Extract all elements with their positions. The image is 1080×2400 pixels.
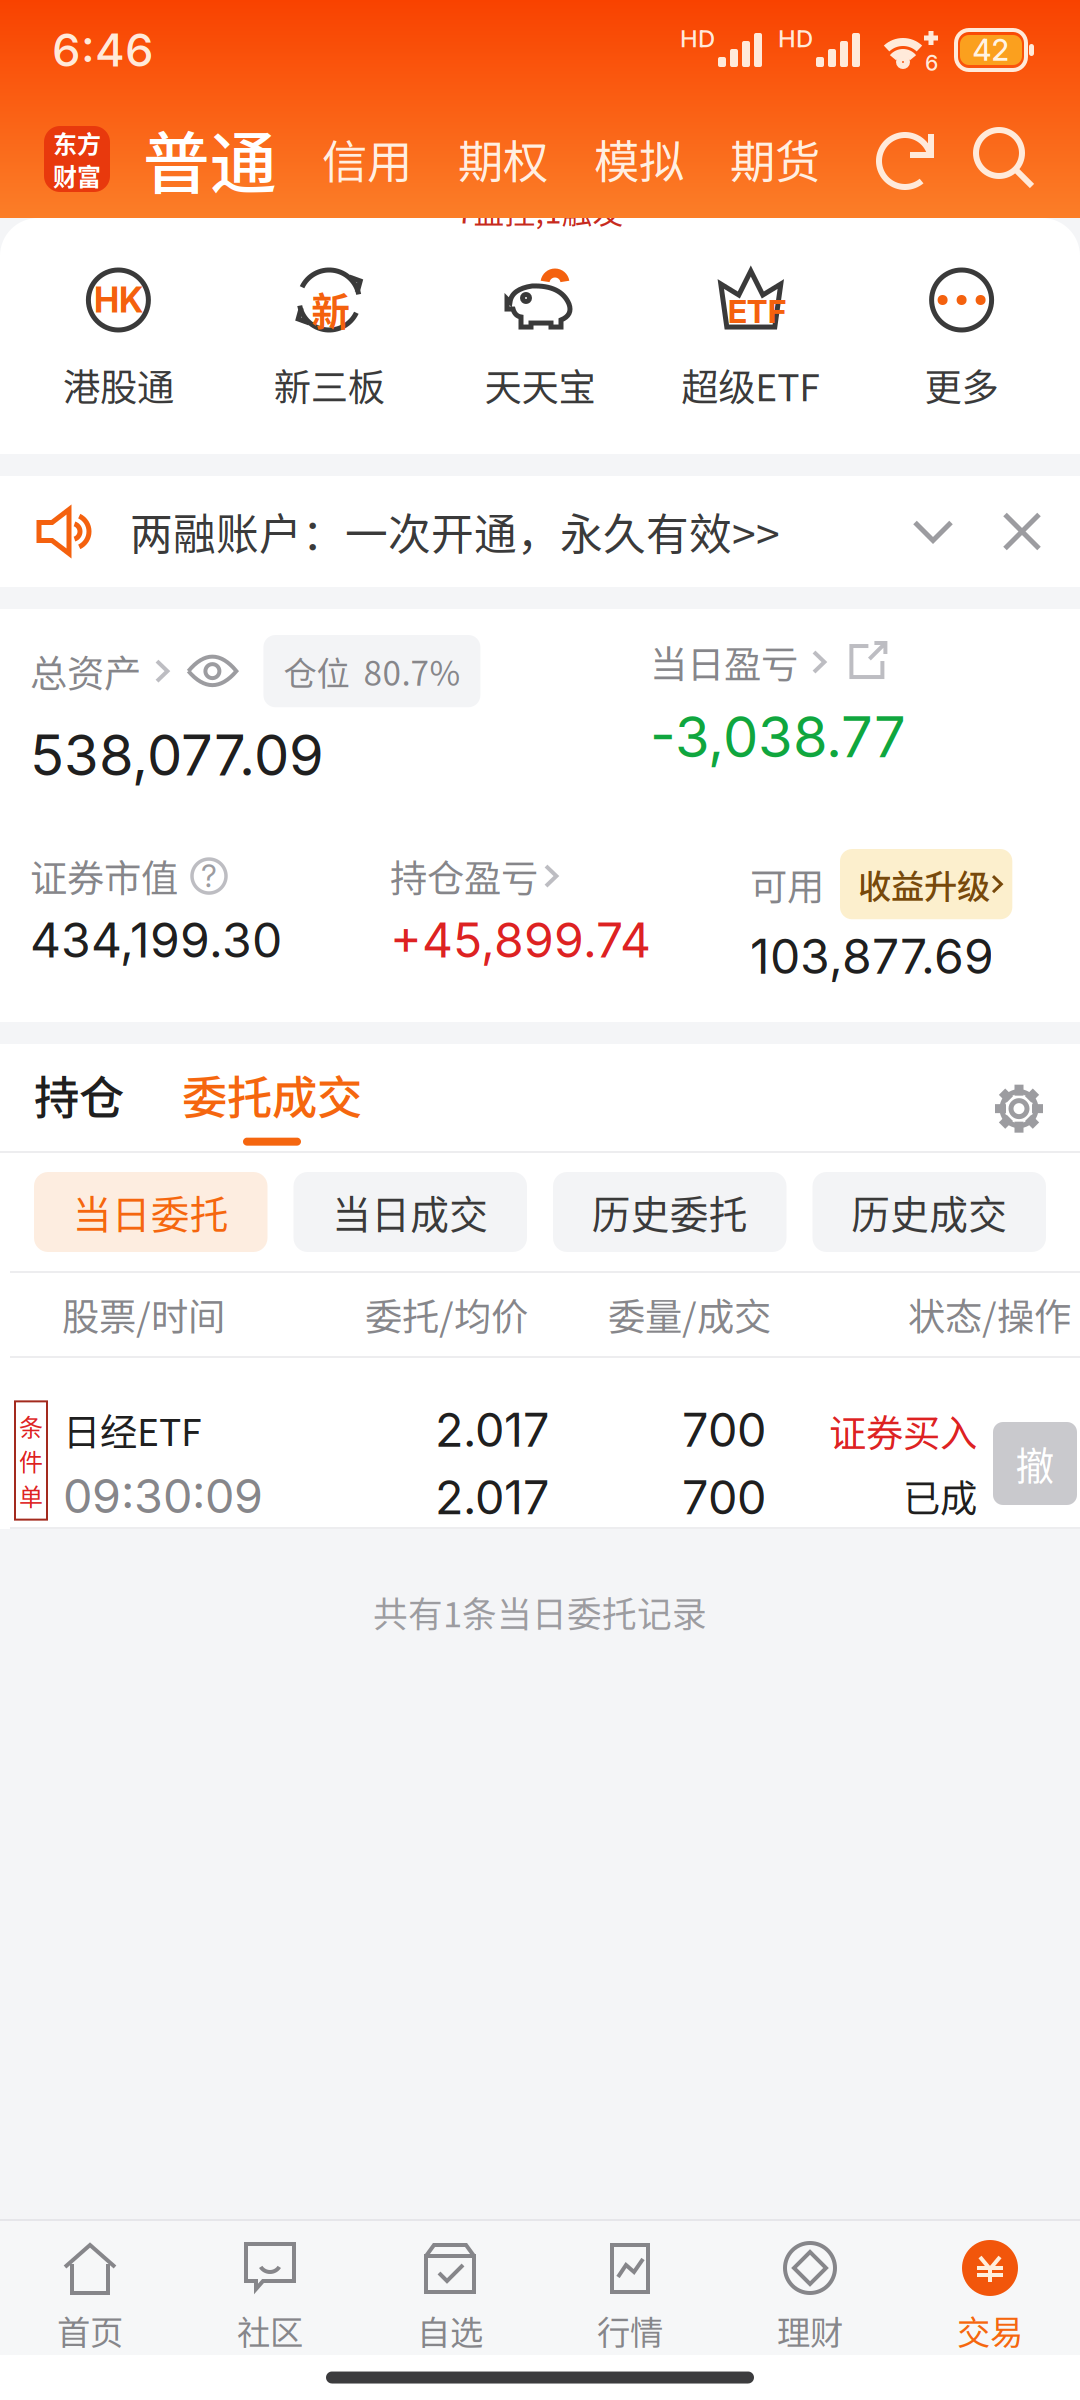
staticText: 可用 <box>750 857 824 911</box>
button[interactable]: 刷新 <box>874 128 936 190</box>
button[interactable]: 首页 <box>0 2221 180 2355</box>
button[interactable]: 持仓盈亏 <box>390 849 750 969</box>
staticText: 历史委托 <box>592 1184 748 1240</box>
staticText: 证券买入 <box>829 1404 977 1458</box>
staticText: 撤 <box>1015 1435 1054 1491</box>
staticText: 持仓 <box>34 1062 124 1128</box>
staticText: 状态/操作 <box>908 1287 1071 1342</box>
staticText: ETF <box>728 292 787 331</box>
button[interactable]: 天天宝 <box>435 264 645 412</box>
staticText: 2.017 <box>435 1469 549 1525</box>
staticText: 股票/时间 <box>62 1287 225 1342</box>
staticText: 当日委托 <box>73 1184 229 1240</box>
staticText: 超级ETF <box>681 358 820 412</box>
staticText: 103,877.69 <box>750 927 994 985</box>
button[interactable]: 普通 <box>143 111 277 207</box>
staticText: 538,077.09 <box>30 721 324 789</box>
button[interactable]: 期货 <box>730 126 820 192</box>
button[interactable]: HK <box>13 264 224 412</box>
staticText: 已成 <box>903 1469 977 1523</box>
staticText: 7监控,1触发 <box>456 188 623 232</box>
staticText: 条 <box>19 1408 43 1443</box>
button[interactable]: 委托成交 <box>182 1062 362 1146</box>
button[interactable]: 当日委托 <box>34 1172 267 1252</box>
staticText: 收益升级 <box>858 860 990 908</box>
staticText: 期权 <box>458 126 548 192</box>
button[interactable]: 当日成交 <box>293 1172 527 1252</box>
staticText: 港股通 <box>63 358 174 412</box>
button[interactable]: 总资产 <box>30 635 480 707</box>
staticText: 更多 <box>925 358 999 412</box>
staticText: 天天宝 <box>484 358 595 412</box>
staticText: +45,899.74 <box>390 911 651 969</box>
staticText: 自选 <box>417 2306 483 2354</box>
button[interactable]: 交易 <box>900 2221 1080 2355</box>
button[interactable]: 当日盈亏 <box>650 635 890 689</box>
staticText: 东方 <box>53 125 101 160</box>
staticText: 当日成交 <box>332 1184 488 1240</box>
staticText: 两融账户：一次开通，永久有效>> <box>130 501 780 562</box>
button[interactable]: ETF <box>645 264 856 412</box>
staticText: 仓位 80.7% <box>283 647 460 695</box>
button[interactable]: 历史成交 <box>812 1172 1046 1252</box>
staticText: HD <box>778 24 813 53</box>
staticText: 件 <box>19 1443 43 1478</box>
staticText: ? <box>201 857 217 895</box>
staticText: 委托/均价 <box>365 1287 528 1342</box>
staticText: 模拟 <box>594 126 684 192</box>
button[interactable]: 收益升级 <box>840 849 1012 919</box>
staticText: 总资产 <box>30 644 141 698</box>
staticText: 日经ETF <box>63 1403 202 1457</box>
staticText: 社区 <box>237 2306 303 2354</box>
button[interactable]: 更多 <box>856 264 1067 412</box>
staticText: HK <box>94 279 143 321</box>
staticText: 财富 <box>53 158 101 193</box>
button[interactable]: 关闭 <box>986 494 1058 568</box>
button[interactable]: 搜索 <box>972 126 1036 192</box>
staticText: 历史成交 <box>851 1184 1007 1240</box>
button[interactable]: 信用 <box>322 126 412 192</box>
button[interactable]: 持仓 <box>34 1062 124 1146</box>
staticText: 行情 <box>597 2306 663 2354</box>
staticText: 700 <box>682 1469 766 1525</box>
staticText: 700 <box>682 1401 766 1458</box>
staticText: 2.017 <box>435 1401 549 1458</box>
button[interactable]: 展开 <box>896 494 970 568</box>
staticText: 42 <box>972 32 1009 68</box>
button[interactable]: 新 <box>224 264 435 412</box>
staticText: 普通 <box>143 111 277 207</box>
button[interactable]: 历史委托 <box>553 1172 786 1252</box>
staticText: 期货 <box>730 126 820 192</box>
staticText: 持仓盈亏 <box>390 849 538 903</box>
button[interactable]: 自选 <box>360 2221 540 2355</box>
staticText: 09:30:09 <box>63 1468 263 1524</box>
staticText: 共有1条当日委托记录 <box>373 1587 707 1637</box>
staticText: 新三板 <box>274 358 385 412</box>
button[interactable]: 模拟 <box>594 126 684 192</box>
button[interactable]: 期权 <box>458 126 548 192</box>
staticText: 委托成交 <box>182 1062 362 1128</box>
staticText: 交易 <box>957 2306 1023 2354</box>
button[interactable]: 撤 <box>993 1422 1077 1505</box>
staticText: 6:46 <box>52 23 154 77</box>
staticText: 434,199.30 <box>30 911 282 969</box>
button[interactable]: 社区 <box>180 2221 360 2355</box>
staticText: 首页 <box>57 2306 123 2354</box>
staticText: 理财 <box>777 2306 843 2354</box>
staticText: 委量/成交 <box>608 1287 771 1342</box>
staticText: -3,038.77 <box>650 703 906 771</box>
staticText: 信用 <box>322 126 412 192</box>
staticText: 新 <box>311 281 350 337</box>
staticText: 6 <box>925 50 938 76</box>
button[interactable]: 理财 <box>720 2221 900 2355</box>
staticText: 证券市值 <box>30 849 178 903</box>
button[interactable]: 行情 <box>540 2221 720 2355</box>
button[interactable]: 东方 <box>44 126 110 192</box>
staticText: HD <box>680 24 715 53</box>
button[interactable]: 设置 <box>992 1082 1046 1146</box>
staticText: 单 <box>19 1478 43 1513</box>
staticText: 当日盈亏 <box>650 635 798 689</box>
